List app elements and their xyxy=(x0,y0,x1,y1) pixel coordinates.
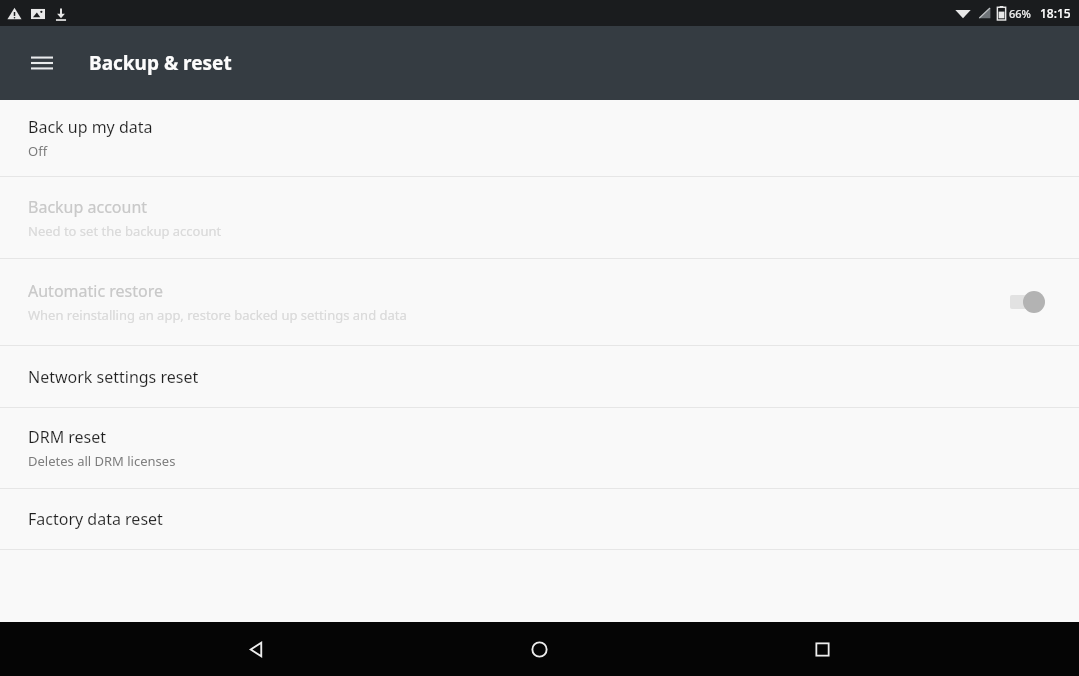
button[interactable]: Factory data reset xyxy=(0,489,1079,549)
button[interactable]: Home xyxy=(510,622,568,676)
staticText: Deletes all DRM licenses xyxy=(28,452,176,470)
button[interactable]: Back up my data xyxy=(0,100,1079,176)
button[interactable]: Open navigation menu xyxy=(18,39,66,87)
staticText: 18:15 xyxy=(1040,5,1071,21)
staticText: 66% xyxy=(1009,6,1031,21)
button[interactable]: Backup account xyxy=(0,177,1079,258)
button[interactable]: Automatic restore xyxy=(0,259,1079,345)
staticText: DRM reset xyxy=(28,426,107,448)
staticText: Automatic restore xyxy=(28,280,163,302)
staticText: Off xyxy=(28,142,48,160)
staticText: Network settings reset xyxy=(28,366,199,388)
staticText: Backup & reset xyxy=(89,50,232,76)
staticText: Need to set the backup account xyxy=(28,222,222,240)
staticText: Factory data reset xyxy=(28,508,163,530)
button[interactable]: DRM reset xyxy=(0,408,1079,488)
staticText: Back up my data xyxy=(28,116,153,138)
button[interactable]: Recent apps xyxy=(793,622,851,676)
button[interactable]: Automatic restore toggle xyxy=(1007,287,1055,317)
button[interactable]: Back xyxy=(227,622,285,676)
staticText: Backup account xyxy=(28,196,148,218)
button[interactable]: Network settings reset xyxy=(0,346,1079,407)
staticText: When reinstalling an app, restore backed… xyxy=(28,306,407,324)
